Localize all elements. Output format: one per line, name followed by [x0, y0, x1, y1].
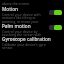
button[interactable]: Toggle — [49, 10, 62, 15]
staticText: Control your device with motions like ti… — [2, 12, 47, 28]
staticText: Palm motion — [2, 23, 46, 29]
button[interactable] — [0, 6, 64, 23]
button[interactable] — [0, 35, 64, 47]
staticText: Control your device by touching the scre… — [2, 29, 47, 41]
staticText: Calibrate your device's gyro sensor. — [2, 42, 56, 50]
button[interactable] — [0, 23, 64, 35]
staticText: above the screen. — [2, 1, 46, 6]
staticText: Motion — [2, 6, 46, 12]
staticText: Gyroscope calibration — [2, 36, 56, 42]
button[interactable]: Toggle — [49, 25, 62, 30]
